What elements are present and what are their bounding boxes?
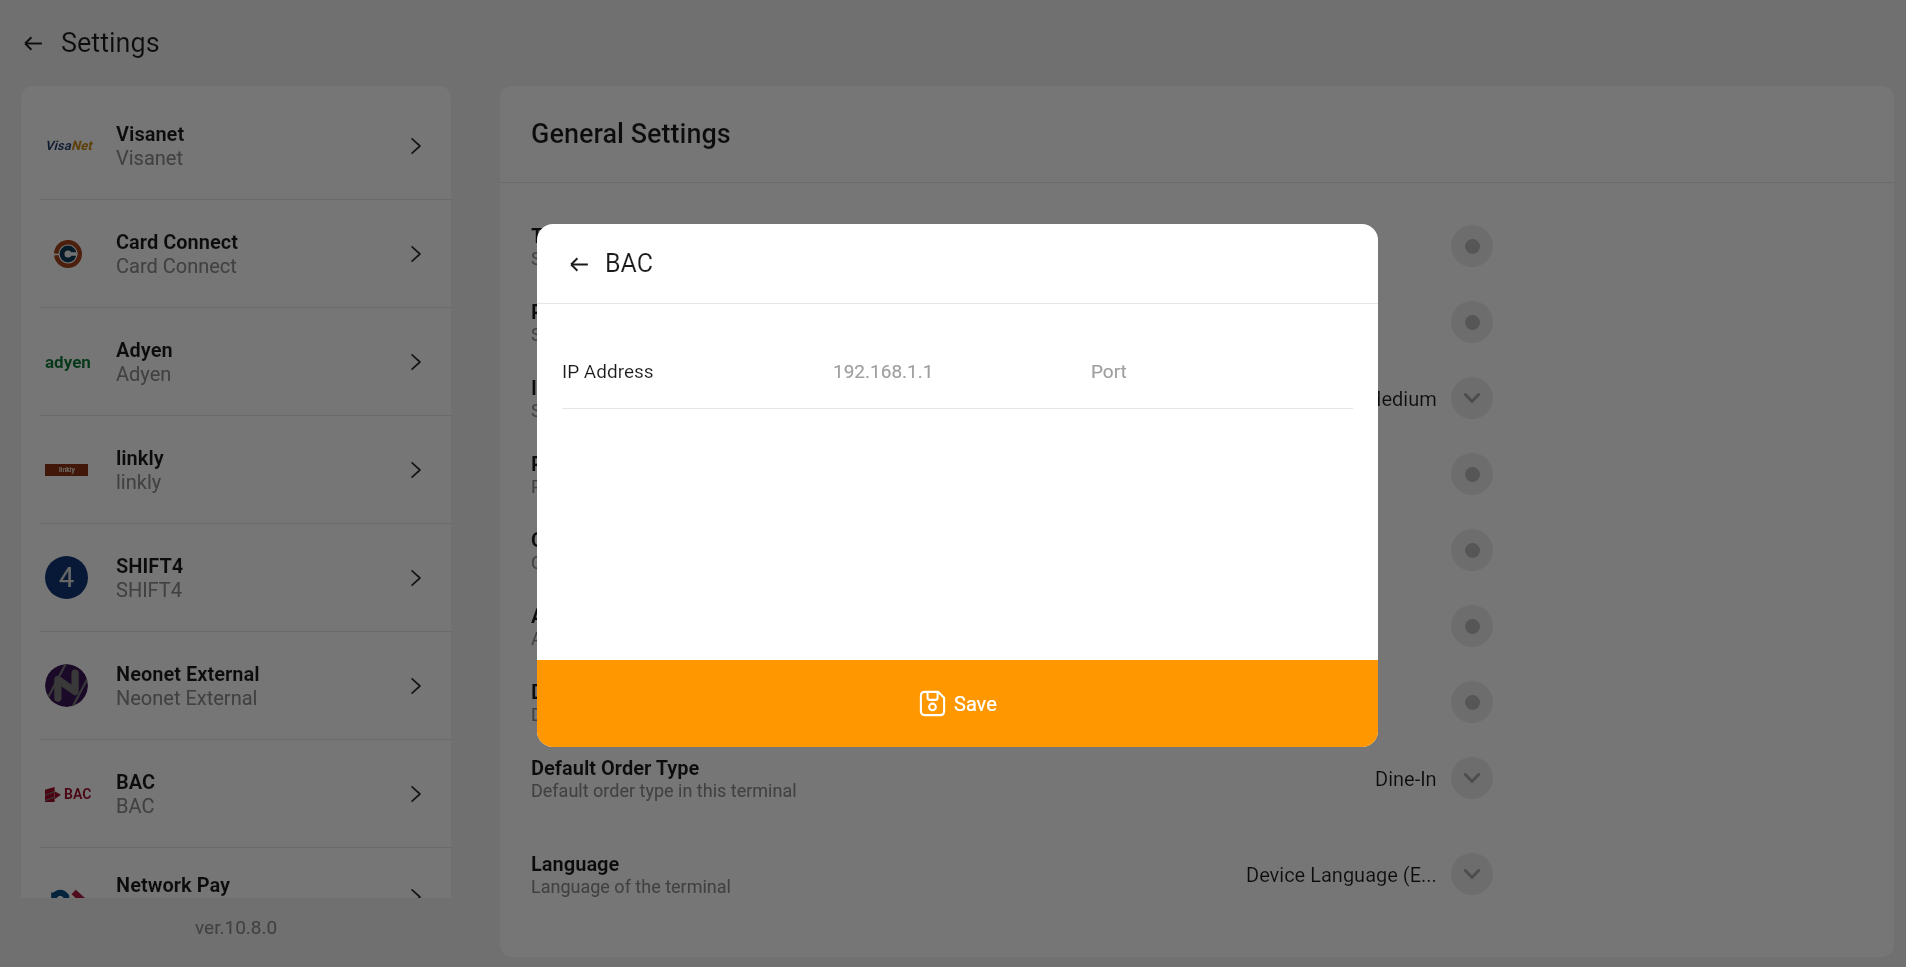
staticText: Card Connect — [116, 230, 239, 253]
button[interactable]: Change Language — [1451, 853, 1493, 895]
staticText: ver.10.8.0 — [195, 916, 278, 938]
staticText: IP Address — [562, 360, 654, 382]
staticText: Default Order Type — [531, 756, 700, 779]
staticText: BAC — [605, 249, 654, 278]
staticText: Visa — [45, 138, 71, 153]
button[interactable]: Card Connect — [21, 200, 451, 307]
button[interactable]: adyen — [21, 308, 451, 415]
staticText: Customer Copy — [531, 528, 670, 551]
staticText: linkly — [116, 446, 164, 469]
staticText: Input Method — [531, 376, 652, 399]
staticText: Language — [531, 852, 620, 875]
button[interactable]: Toggle Digital Receipt — [1451, 681, 1493, 723]
staticText: Save — [954, 692, 997, 715]
staticText: Digital receipt for the customer — [531, 704, 779, 725]
staticText: Printer Density — [531, 452, 665, 475]
button[interactable]: Input Method — [500, 360, 1894, 436]
staticText: Net — [71, 138, 92, 153]
button[interactable]: linkly — [21, 416, 451, 523]
staticText: Adyen — [116, 338, 173, 361]
button[interactable]: Language — [500, 836, 1894, 912]
staticText: Print density of the printer — [531, 476, 739, 497]
staticText: Settings — [61, 27, 160, 59]
button[interactable]: Default Order Type — [500, 740, 1894, 816]
button[interactable]: Back — [560, 245, 598, 283]
staticText: Network Pay — [116, 873, 231, 896]
staticText: Customer copy of the receipt — [531, 552, 763, 573]
staticText: BAC — [64, 786, 92, 802]
button[interactable]: Toggle Auto Print — [1451, 605, 1493, 647]
staticText: Adyen — [116, 362, 172, 385]
button[interactable]: Printer Density — [500, 436, 1894, 512]
staticText: BAC — [116, 794, 155, 817]
staticText: Default order type in this terminal — [531, 780, 797, 801]
button[interactable]: 4 — [21, 524, 451, 631]
staticText: linkly — [116, 470, 162, 493]
button[interactable]: BAC — [21, 740, 451, 847]
button[interactable]: Save — [537, 660, 1378, 747]
button[interactable]: Tips — [500, 208, 1894, 284]
staticText: Automatically print the receipt — [531, 628, 771, 649]
staticText: Print Receipt — [531, 300, 648, 323]
staticText: 192.168.1.1 — [833, 360, 934, 382]
staticText: Neonet External — [116, 686, 258, 709]
staticText: Medium — [1364, 387, 1437, 410]
staticText: Select the input method — [531, 400, 721, 421]
staticText: Digital Receipt — [531, 680, 662, 703]
staticText: Show the receipt after payment — [531, 324, 781, 345]
staticText: Neonet External — [116, 662, 260, 685]
button[interactable]: Customer Copy — [500, 512, 1894, 588]
staticText: BAC — [116, 770, 156, 793]
button[interactable]: Digital Receipt — [500, 664, 1894, 740]
staticText: Dine-In — [1375, 767, 1437, 790]
button[interactable]: Neonet External — [21, 632, 451, 739]
button[interactable]: Print Receipt — [500, 284, 1894, 360]
staticText: 4 — [59, 562, 75, 594]
button[interactable]: Toggle Tips — [1451, 225, 1493, 267]
staticText: Visanet — [116, 122, 185, 145]
staticText: Language of the terminal — [531, 876, 731, 897]
staticText: Tips — [531, 224, 571, 247]
button[interactable]: Toggle Print Receipt — [1451, 301, 1493, 343]
staticText: SHIFT4 — [116, 554, 184, 577]
staticText: Port — [1091, 360, 1127, 382]
button[interactable]: Back — [14, 24, 52, 62]
staticText: Device Language (E... — [1246, 863, 1437, 886]
button[interactable]: Change Default Order Type — [1451, 757, 1493, 799]
button[interactable]: Change Input Method — [1451, 377, 1493, 419]
button[interactable]: Visa — [21, 92, 451, 199]
staticText: Auto Print — [531, 604, 622, 627]
staticText: linkly — [59, 466, 75, 474]
staticText: Card Connect — [116, 254, 237, 277]
button[interactable]: Toggle Customer Copy — [1451, 529, 1493, 571]
staticText: Show tips after payment — [531, 248, 726, 269]
staticText: General Settings — [531, 118, 731, 150]
staticText: adyen — [45, 352, 91, 372]
button[interactable]: Auto Print — [500, 588, 1894, 664]
staticText: Visanet — [116, 146, 183, 169]
button[interactable]: Network Pay — [21, 848, 451, 898]
button[interactable]: Toggle Printer Density — [1451, 453, 1493, 495]
staticText: SHIFT4 — [116, 578, 183, 601]
